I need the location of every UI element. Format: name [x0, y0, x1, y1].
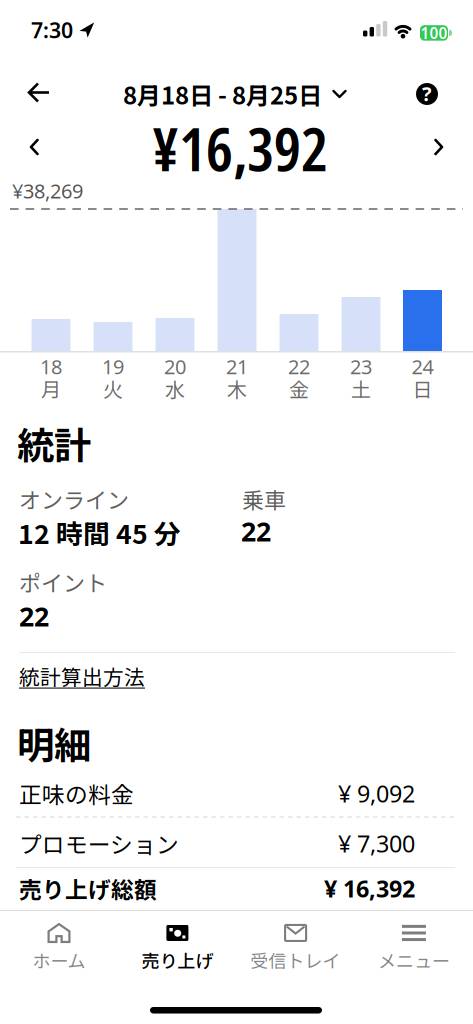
- staticText: 火: [103, 374, 123, 403]
- staticText: ¥16,392: [152, 107, 328, 189]
- button[interactable]: Back: [0, 0, 40, 36]
- staticText: 水: [165, 374, 185, 403]
- staticText: 受信トレイ: [251, 947, 341, 973]
- staticText: ¥ 16,392: [324, 872, 415, 904]
- staticText: 22: [288, 353, 310, 380]
- staticText: ¥ 7,300: [338, 827, 415, 859]
- button[interactable]: 売り上げ: [122, 917, 232, 979]
- staticText: 21: [226, 353, 248, 380]
- button[interactable]: メニュー: [359, 917, 469, 979]
- button[interactable]: Previous week: [29, 139, 38, 155]
- staticText: 7:30: [31, 15, 73, 45]
- staticText: 月: [41, 374, 61, 403]
- staticText: 22: [241, 513, 271, 549]
- staticText: オンライン: [19, 483, 129, 515]
- staticText: 8月18日 - 8月25日: [123, 77, 322, 111]
- staticText: 乗車: [242, 483, 286, 515]
- staticText: 土: [351, 374, 371, 403]
- button[interactable]: 統計算出方法: [0, 0, 126, 30]
- staticText: 23: [350, 353, 372, 380]
- staticText: ?: [422, 80, 432, 107]
- staticText: ホーム: [32, 947, 85, 973]
- staticText: ¥38,269: [12, 177, 83, 204]
- staticText: 統計: [17, 416, 91, 470]
- staticText: 100: [420, 22, 447, 43]
- button[interactable]: ホーム: [4, 917, 114, 979]
- staticText: 売り上げ: [141, 947, 213, 973]
- staticText: 売り上げ総額: [19, 872, 157, 905]
- staticText: 日: [412, 374, 432, 403]
- staticText: 20: [164, 353, 186, 380]
- button[interactable]: 受信トレイ: [241, 917, 351, 979]
- staticText: 19: [102, 353, 124, 380]
- staticText: ポイント: [19, 566, 107, 598]
- button[interactable]: Help: [416, 80, 438, 108]
- staticText: 正味の料金: [19, 777, 134, 810]
- staticText: 12 時間 45 分: [18, 513, 181, 552]
- staticText: 明細: [17, 716, 91, 770]
- staticText: 18: [40, 353, 62, 380]
- staticText: ¥ 9,092: [338, 777, 415, 809]
- staticText: 22: [19, 598, 49, 634]
- staticText: 金: [289, 374, 309, 403]
- staticText: 24: [411, 353, 433, 380]
- staticText: メニュー: [378, 947, 450, 973]
- staticText: 統計算出方法: [19, 661, 145, 691]
- staticText: 木: [227, 374, 247, 403]
- button[interactable]: Next week: [434, 139, 443, 155]
- button[interactable]: 8月18日 - 8月25日: [123, 77, 346, 111]
- staticText: プロモーション: [19, 827, 179, 860]
